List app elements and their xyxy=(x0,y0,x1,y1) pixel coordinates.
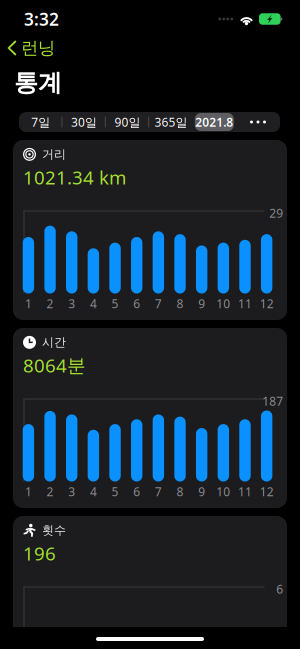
staticText: 8 xyxy=(176,483,183,499)
staticText: 7 xyxy=(155,483,162,499)
button[interactable]: 더 보기 xyxy=(236,112,280,132)
staticText: 11 xyxy=(238,295,252,311)
button[interactable]: 거리 xyxy=(13,140,287,320)
staticText: 6 xyxy=(133,483,140,499)
button[interactable]: 30일 xyxy=(62,112,106,132)
button[interactable]: 365일 xyxy=(149,112,193,132)
staticText: 런닝 xyxy=(21,37,55,59)
staticText: 9 xyxy=(198,295,205,311)
staticText: 5 xyxy=(111,483,118,499)
button[interactable]: 7일 xyxy=(19,112,62,132)
staticText: 2021.8 xyxy=(195,114,233,130)
button[interactable]: 런닝 xyxy=(0,34,55,62)
staticText: 1 xyxy=(25,483,32,499)
button[interactable]: 시간 xyxy=(13,328,287,508)
staticText: 30일 xyxy=(71,114,97,130)
staticText: 통계 xyxy=(14,68,62,97)
staticText: 2 xyxy=(47,483,54,499)
staticText: 12 xyxy=(260,295,274,311)
staticText: 5 xyxy=(111,295,118,311)
staticText: 7 xyxy=(155,295,162,311)
staticText: 2 xyxy=(47,295,54,311)
staticText: 12 xyxy=(260,483,274,499)
button[interactable]: 횟수 xyxy=(13,516,287,649)
button[interactable]: 90일 xyxy=(106,112,149,132)
staticText: 11 xyxy=(238,483,252,499)
staticText: 6 xyxy=(276,581,283,597)
staticText: 거리 xyxy=(42,147,66,162)
staticText: 3 xyxy=(68,295,75,311)
staticText: 10 xyxy=(216,483,230,499)
staticText: 시간 xyxy=(42,335,66,350)
staticText: 6 xyxy=(133,295,140,311)
button[interactable]: 2021.8 xyxy=(193,112,236,132)
staticText: 187 xyxy=(262,393,283,409)
staticText: 1 xyxy=(25,295,32,311)
staticText: 8 xyxy=(176,295,183,311)
staticText: 3:32 xyxy=(24,7,59,30)
staticText: 3 xyxy=(68,483,75,499)
staticText: 횟수 xyxy=(42,523,66,538)
staticText: 8064분 xyxy=(23,353,86,377)
staticText: 196 xyxy=(23,541,56,565)
staticText: 29 xyxy=(269,205,283,221)
staticText: 1021.34 km xyxy=(23,165,126,189)
staticText: 90일 xyxy=(114,114,140,130)
staticText: 7일 xyxy=(31,114,50,130)
staticText: 4 xyxy=(90,295,97,311)
staticText: 4 xyxy=(90,483,97,499)
staticText: 10 xyxy=(216,295,230,311)
staticText: 365일 xyxy=(154,114,187,130)
staticText: 9 xyxy=(198,483,205,499)
